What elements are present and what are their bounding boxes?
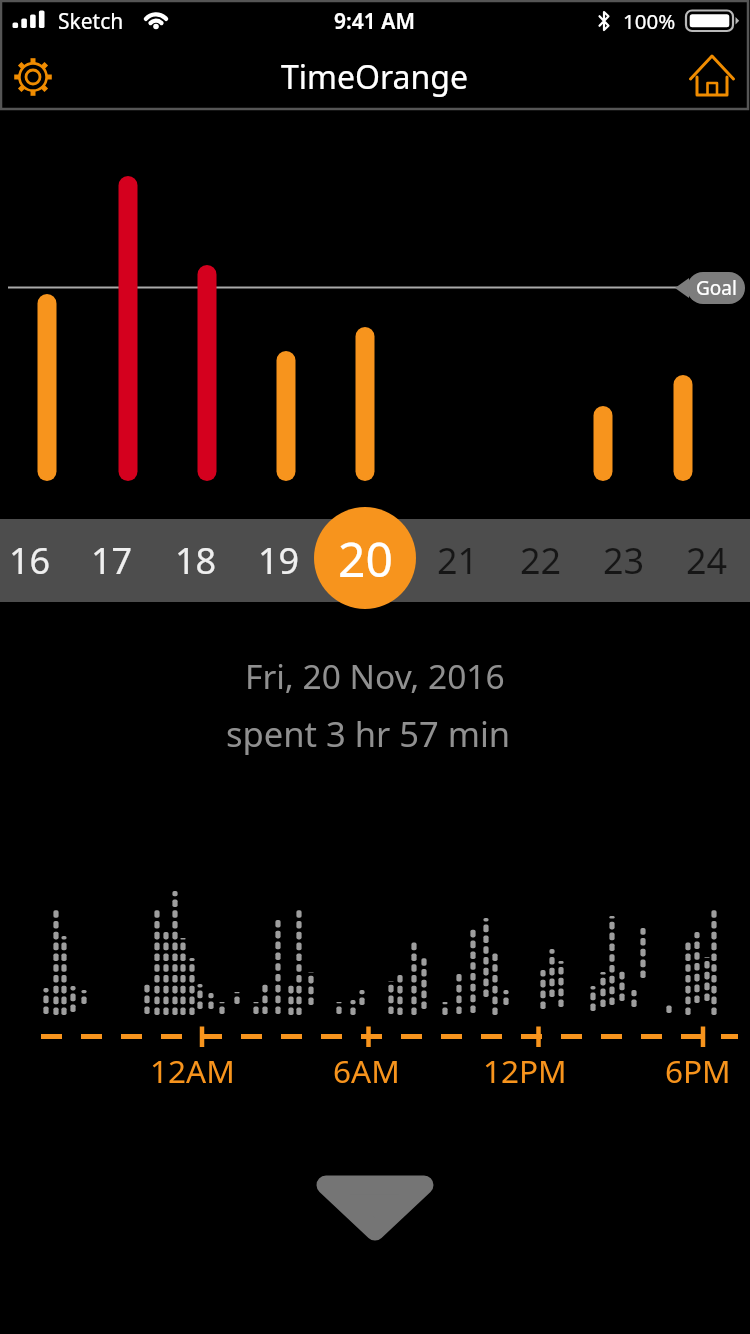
button[interactable] (8, 52, 58, 102)
staticText: 20 (338, 526, 393, 591)
button[interactable] (315, 1170, 435, 1246)
button[interactable]: 16 (0, 519, 62, 602)
staticText: Sketch (58, 7, 124, 36)
button[interactable]: 19 (247, 519, 311, 602)
button[interactable]: 24 (675, 519, 739, 602)
staticText: Goal (696, 275, 737, 301)
staticText: TimeOrange (281, 55, 469, 99)
staticText: 22 (520, 536, 562, 585)
button[interactable]: 22 (509, 519, 573, 602)
staticText: 24 (686, 536, 728, 585)
staticText: 21 (437, 536, 479, 585)
staticText: Fri, 20 Nov, 2016 (245, 653, 505, 699)
button[interactable]: 20 (314, 507, 416, 609)
staticText: 18 (175, 536, 217, 585)
staticText: 23 (603, 536, 645, 585)
staticText: 17 (91, 536, 133, 585)
staticText: 6PM (665, 1049, 731, 1092)
staticText: 19 (258, 536, 300, 585)
staticText: 12AM (150, 1049, 235, 1092)
button[interactable]: 17 (80, 519, 144, 602)
button[interactable]: 21 (426, 519, 490, 602)
staticText: 12PM (483, 1049, 567, 1092)
staticText: 9:41 AM (334, 7, 415, 36)
button[interactable]: 18 (164, 519, 228, 602)
staticText: spent 3 hr 57 min (226, 710, 511, 757)
staticText: 16 (9, 536, 51, 585)
button[interactable] (685, 52, 740, 107)
staticText: 6AM (333, 1049, 400, 1092)
button[interactable]: 23 (592, 519, 656, 602)
staticText: 100% (623, 7, 676, 35)
